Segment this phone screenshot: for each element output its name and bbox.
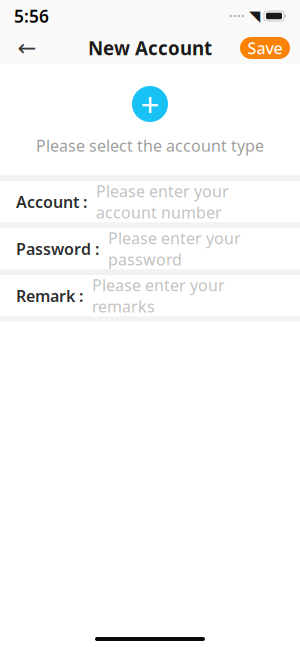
staticText: New Account bbox=[88, 36, 212, 60]
button[interactable]: Add account type bbox=[128, 82, 172, 126]
button[interactable]: Password : bbox=[0, 228, 300, 269]
staticText: ◥ bbox=[249, 8, 260, 24]
staticText: + bbox=[140, 82, 159, 126]
staticText: Account : bbox=[16, 191, 87, 212]
button[interactable]: Account : bbox=[0, 181, 300, 222]
staticText: ← bbox=[17, 35, 36, 61]
button[interactable]: Save bbox=[240, 37, 290, 59]
staticText: Please enter your password bbox=[108, 227, 241, 270]
button[interactable]: Back bbox=[10, 32, 44, 64]
staticText: Please enter your account number bbox=[96, 180, 229, 223]
staticText: 5:56 bbox=[14, 4, 49, 27]
staticText: Remark : bbox=[16, 285, 83, 306]
staticText: Please enter your remarks bbox=[92, 274, 225, 317]
staticText: Please select the account type bbox=[36, 135, 264, 156]
staticText: Save bbox=[247, 37, 282, 59]
button[interactable]: Remark : bbox=[0, 275, 300, 316]
staticText: Password : bbox=[16, 238, 99, 259]
